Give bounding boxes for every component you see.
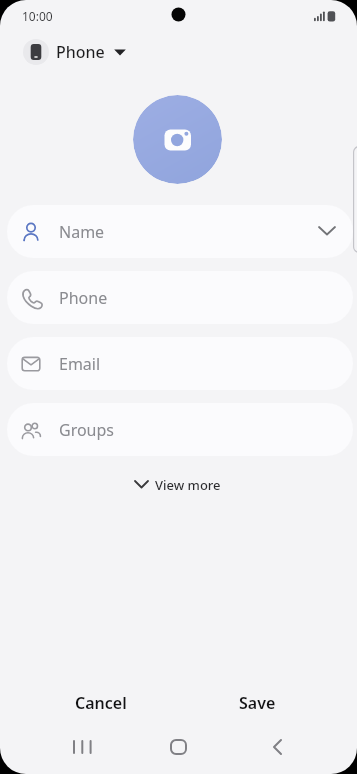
staticText: Save [239, 692, 276, 714]
staticText: Email [59, 353, 101, 375]
button[interactable]: Name [7, 205, 353, 258]
button[interactable] [133, 95, 222, 184]
staticText: Phone [59, 287, 108, 309]
button[interactable]: Save [197, 686, 317, 720]
button[interactable]: Groups [7, 403, 353, 456]
staticText: Phone [56, 41, 105, 63]
staticText: Groups [59, 419, 115, 441]
staticText: View more [155, 476, 221, 494]
button[interactable]: Cancel [41, 686, 161, 720]
staticText: Cancel [75, 692, 127, 714]
button[interactable]: Phone [23, 37, 126, 66]
button[interactable] [153, 731, 203, 763]
button[interactable]: Email [7, 337, 353, 390]
button[interactable]: View more [134, 470, 221, 499]
button[interactable]: Phone [7, 271, 353, 324]
button[interactable] [57, 731, 107, 763]
staticText: Name [59, 221, 105, 243]
button[interactable] [252, 731, 302, 763]
staticText: 10:00 [22, 8, 53, 24]
